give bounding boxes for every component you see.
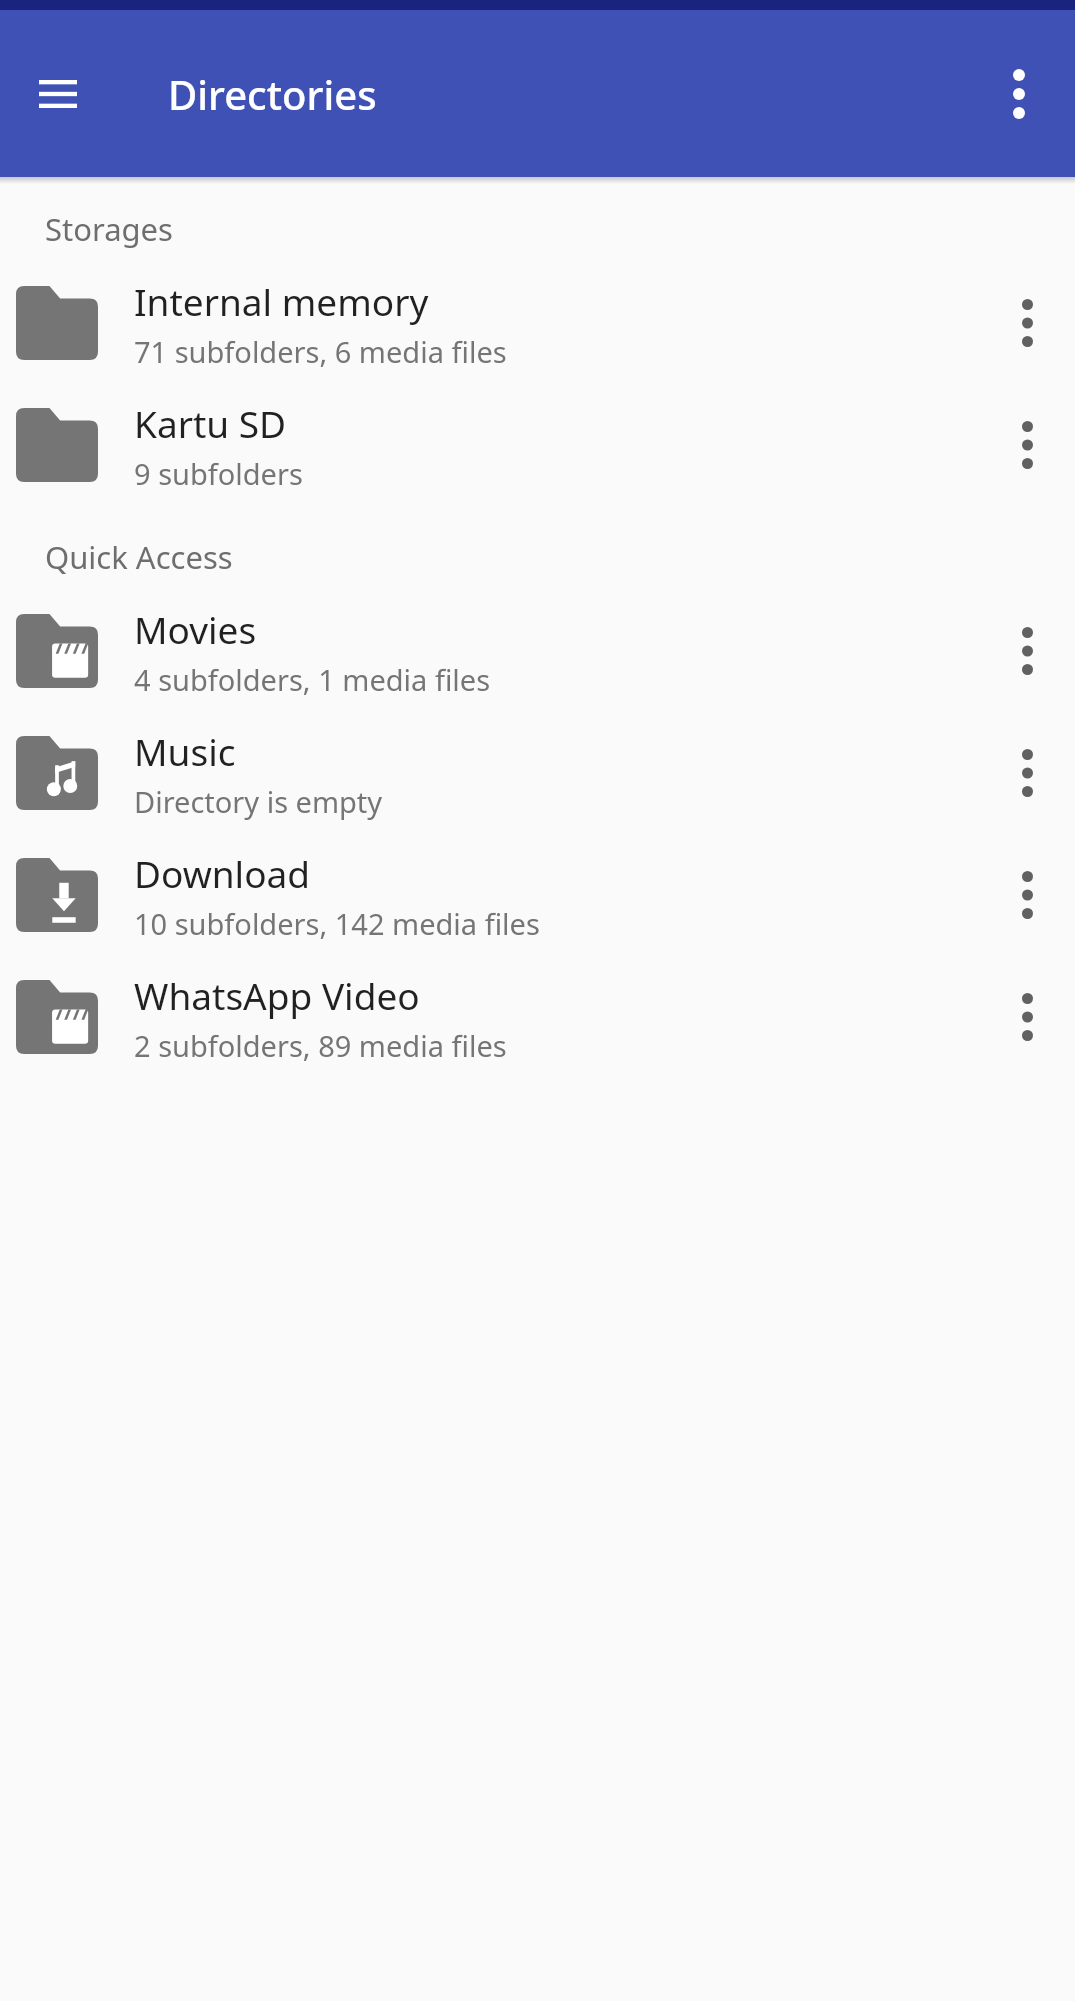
staticText: Kartu SD (134, 398, 287, 448)
button[interactable]: Movies (0, 590, 1075, 712)
staticText: Quick Access (45, 536, 233, 578)
staticText: 10 subfolders, 142 media files (134, 904, 540, 943)
staticText: Download (134, 848, 311, 898)
button[interactable]: WhatsApp Video (0, 956, 1075, 1078)
staticText: WhatsApp Video (134, 970, 420, 1020)
button[interactable]: Open navigation drawer (22, 58, 94, 130)
button[interactable]: More options (981, 56, 1057, 132)
button[interactable]: More options for Download (979, 834, 1075, 956)
staticText: Internal memory (134, 276, 429, 326)
button[interactable]: Music (0, 712, 1075, 834)
button[interactable]: Internal memory (0, 262, 1075, 384)
staticText: 2 subfolders, 89 media files (134, 1026, 507, 1065)
button[interactable]: Kartu SD (0, 384, 1075, 506)
staticText: 9 subfolders (134, 454, 303, 493)
button[interactable]: More options for Kartu SD (979, 384, 1075, 506)
staticText: Directories (168, 67, 377, 121)
staticText: Music (134, 726, 236, 776)
staticText: 71 subfolders, 6 media files (134, 332, 507, 371)
button[interactable]: More options for Internal memory (979, 262, 1075, 384)
staticText: Movies (134, 604, 257, 654)
button[interactable]: More options for Music (979, 712, 1075, 834)
button[interactable]: Download (0, 834, 1075, 956)
button[interactable]: More options for WhatsApp Video (979, 956, 1075, 1078)
staticText: Directory is empty (134, 782, 383, 821)
staticText: Storages (45, 208, 173, 250)
staticText: 4 subfolders, 1 media files (134, 660, 491, 699)
button[interactable]: More options for Movies (979, 590, 1075, 712)
